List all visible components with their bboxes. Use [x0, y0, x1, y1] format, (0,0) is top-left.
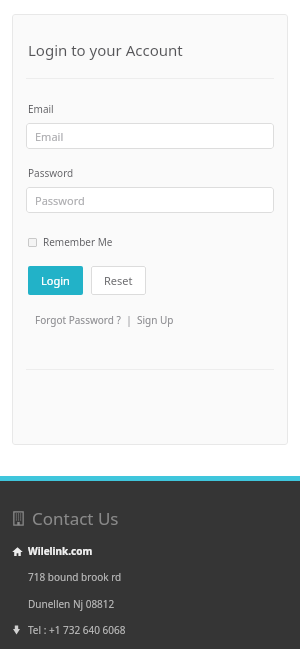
button[interactable]: Login	[28, 266, 83, 295]
staticText: Tel : +1 732 640 6068	[28, 623, 126, 637]
staticText: Email	[35, 129, 64, 144]
staticText: Sign Up	[137, 313, 174, 327]
staticText: Reset	[104, 273, 133, 288]
staticText: Login to your Account	[28, 40, 183, 60]
button[interactable]: Email	[26, 123, 274, 149]
button[interactable]: Sign Up	[137, 313, 174, 327]
other: Phone	[12, 625, 22, 635]
other: Building	[11, 511, 26, 526]
button[interactable]: Remember Me	[28, 235, 113, 249]
other: Home	[12, 546, 23, 557]
staticText: Forgot Password ?	[35, 313, 121, 327]
button[interactable]: Forgot Password ?	[35, 313, 121, 327]
staticText: Dunellen Nj 08812	[28, 597, 115, 611]
staticText: |	[121, 313, 137, 327]
staticText: 718 bound brook rd	[28, 570, 122, 584]
button[interactable]: Password	[26, 187, 274, 213]
staticText: Contact Us	[32, 507, 119, 530]
staticText: Password	[35, 193, 85, 208]
staticText: Wilelink.com	[28, 544, 93, 558]
button[interactable]: Reset	[91, 266, 146, 295]
staticText: Remember Me	[43, 235, 113, 249]
button[interactable]: Home	[12, 544, 93, 558]
staticText: Login	[41, 273, 70, 288]
staticText: Password	[28, 166, 74, 180]
staticText: Email	[28, 102, 54, 116]
